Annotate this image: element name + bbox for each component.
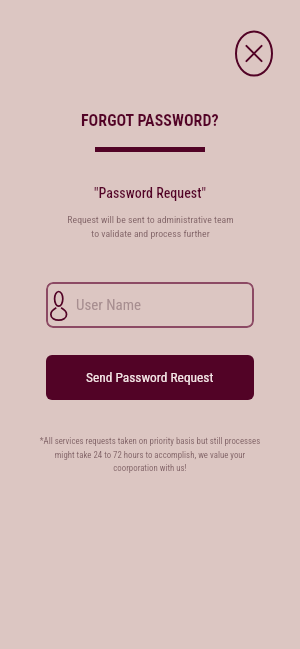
- button[interactable]: Close: [230, 26, 278, 81]
- button[interactable]: Send Password Request: [46, 355, 254, 400]
- staticText: FORGOT PASSWORD?: [81, 111, 219, 130]
- staticText: User Name: [76, 296, 142, 314]
- staticText: Request will be sent to administrative t…: [67, 214, 234, 240]
- staticText: *All services requests taken on priority…: [38, 436, 262, 473]
- staticText: "Password Request": [94, 185, 206, 201]
- staticText: Send Password Request: [86, 370, 214, 386]
- button[interactable]: User Name: [46, 282, 254, 328]
